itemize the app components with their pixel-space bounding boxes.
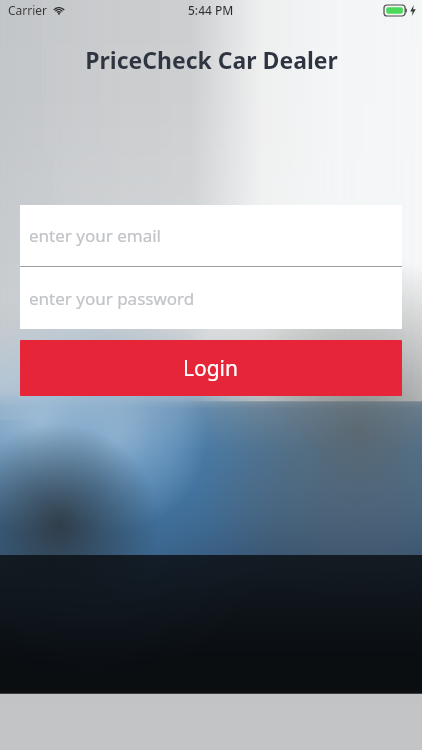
button[interactable]: enter your password	[20, 267, 402, 329]
staticText: Carrier	[8, 2, 48, 18]
staticText: enter your password	[29, 287, 195, 310]
staticText: enter your email	[29, 224, 161, 247]
button[interactable]: Login	[20, 340, 402, 396]
staticText: 5:44 PM	[188, 2, 234, 18]
button[interactable]: enter your email	[20, 205, 402, 266]
staticText: Login	[183, 354, 239, 383]
staticText: PriceCheck Car Dealer	[85, 44, 338, 75]
